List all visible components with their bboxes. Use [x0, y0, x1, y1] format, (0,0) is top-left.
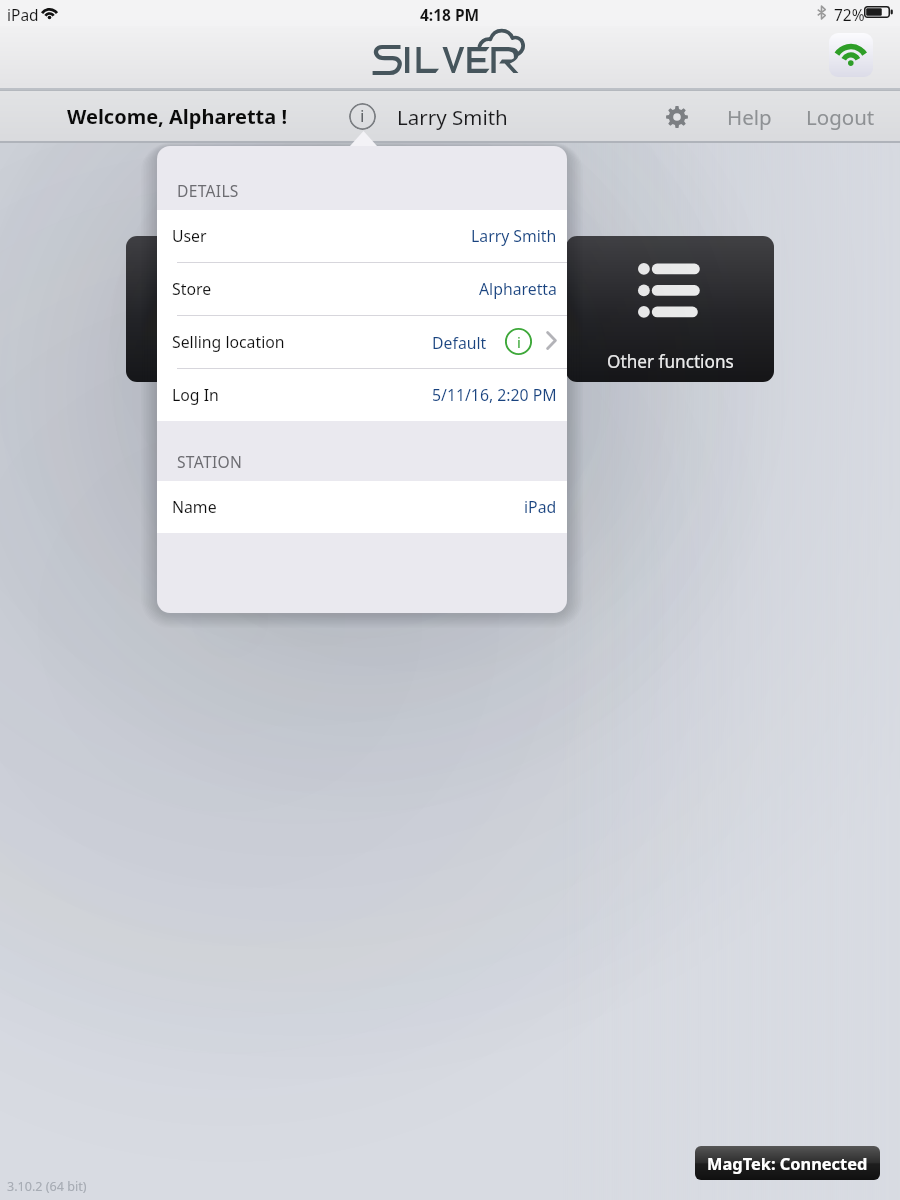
staticText: User [172, 225, 207, 247]
button[interactable]: Store [157, 263, 567, 315]
button[interactable]: Help [712, 90, 787, 143]
staticText: i [360, 104, 365, 127]
staticText: Default [432, 332, 487, 354]
button[interactable]: Logout [791, 90, 890, 143]
button[interactable]: MagTek: Connected [695, 1146, 880, 1180]
staticText: Log In [172, 384, 219, 406]
staticText: 4:18 PM [420, 4, 480, 25]
button[interactable]: Name [157, 481, 567, 533]
staticText: 5/11/16, 2:20 PM [432, 384, 557, 406]
staticText: Selling location [172, 331, 285, 353]
staticText: iPad [7, 4, 39, 25]
staticText: Name [172, 496, 217, 518]
staticText: Logout [806, 103, 875, 131]
staticText: Other functions [607, 350, 734, 373]
button[interactable]: Other functions [566, 236, 774, 382]
button[interactable]: Log In [157, 369, 567, 421]
staticText: STATION [177, 451, 243, 472]
staticText: Larry Smith [397, 103, 508, 131]
staticText: i [517, 332, 521, 352]
button[interactable]: Selling location [157, 316, 567, 368]
staticText: MagTek: Connected [707, 1152, 868, 1174]
staticText: Alpharetta [479, 278, 557, 300]
staticText: Larry Smith [471, 225, 557, 247]
button[interactable]: Function tile [126, 236, 334, 382]
staticText: DETAILS [177, 180, 239, 201]
staticText: 72% [834, 4, 865, 25]
button[interactable]: User [157, 210, 567, 262]
button[interactable]: Settings [651, 90, 703, 143]
staticText: Help [727, 103, 772, 131]
staticText: 3.10.2 (64 bit) [7, 1178, 87, 1195]
button[interactable]: i [349, 90, 508, 143]
staticText: Store [172, 278, 212, 300]
staticText: Welcome, Alpharetta ! [67, 103, 288, 130]
staticText: iPad [524, 496, 557, 518]
button[interactable]: Welcome, Alpharetta ! [56, 90, 299, 143]
button[interactable]: Wi-Fi connected [829, 33, 873, 77]
